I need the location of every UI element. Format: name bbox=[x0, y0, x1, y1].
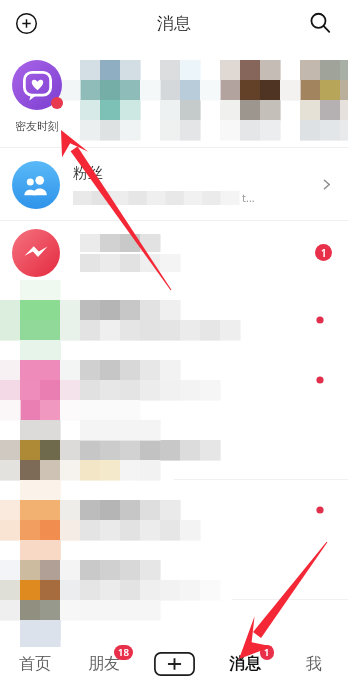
button[interactable]: 首页 bbox=[0, 647, 69, 680]
button[interactable]: Add bbox=[10, 7, 42, 39]
button[interactable] bbox=[220, 60, 280, 140]
staticText: 我 bbox=[306, 654, 322, 674]
staticText: 朋友 bbox=[88, 654, 120, 674]
button[interactable] bbox=[0, 344, 348, 424]
staticText: t... bbox=[242, 190, 255, 205]
staticText: 首页 bbox=[19, 654, 51, 674]
staticText: 密友时刻 bbox=[15, 119, 59, 133]
button[interactable] bbox=[0, 544, 348, 624]
button[interactable] bbox=[0, 424, 348, 484]
button[interactable]: 消息 bbox=[210, 647, 279, 680]
staticText: 粉丝 bbox=[73, 164, 103, 183]
button[interactable] bbox=[0, 624, 348, 664]
button[interactable]: Search bbox=[304, 7, 336, 39]
button[interactable] bbox=[80, 60, 140, 140]
staticText: 18 bbox=[118, 646, 129, 659]
button[interactable]: 1 bbox=[0, 221, 348, 284]
button[interactable] bbox=[12, 60, 62, 110]
staticText: 1 bbox=[264, 646, 270, 659]
button[interactable] bbox=[0, 284, 348, 344]
button[interactable] bbox=[0, 484, 348, 544]
button[interactable]: 我 bbox=[279, 647, 348, 680]
staticText: 消息 bbox=[229, 654, 261, 674]
button[interactable] bbox=[160, 60, 200, 140]
button[interactable]: 朋友 bbox=[69, 647, 138, 680]
button[interactable]: 粉丝 bbox=[0, 148, 348, 221]
staticText: 消息 bbox=[157, 13, 191, 34]
staticText: 1 bbox=[321, 246, 327, 260]
button[interactable]: Post bbox=[154, 652, 195, 676]
button[interactable] bbox=[300, 60, 348, 140]
